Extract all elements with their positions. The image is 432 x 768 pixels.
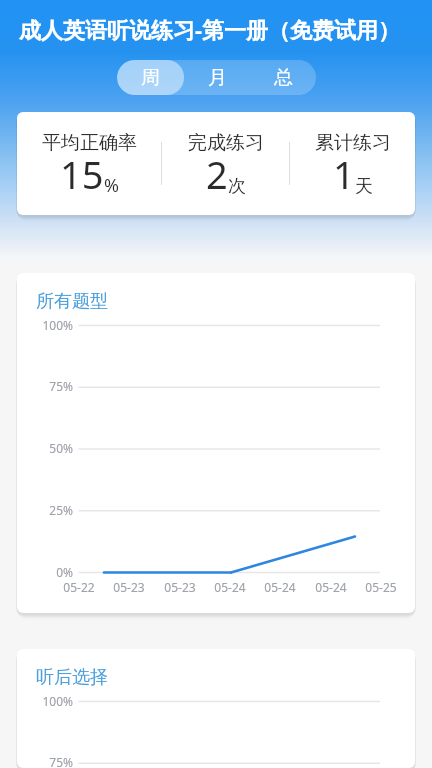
staticText: 总 — [274, 66, 293, 90]
button[interactable]: 月 — [184, 60, 250, 95]
staticText: 听后选择 — [36, 666, 108, 689]
staticText: 25% — [25, 502, 73, 518]
staticText: 所有题型 — [36, 290, 108, 313]
staticText: 成人英语听说练习-第一册（免费试用） — [19, 14, 428, 44]
staticText: 75% — [25, 378, 73, 394]
staticText: 05-25 — [355, 579, 407, 595]
button[interactable]: 周 — [117, 60, 184, 95]
staticText: 05-23 — [103, 579, 155, 595]
staticText: 0% — [25, 564, 73, 580]
staticText: 1 — [333, 148, 355, 200]
staticText: % — [104, 173, 119, 198]
staticText: 次 — [228, 175, 246, 198]
staticText: 05-24 — [254, 579, 306, 595]
staticText: 平均正确率 — [42, 131, 137, 155]
staticText: 05-23 — [154, 579, 206, 595]
staticText: 100% — [25, 693, 73, 709]
button[interactable]: 完成练习 — [162, 120, 289, 207]
button[interactable]: 平均正确率 — [17, 120, 161, 207]
staticText: 100% — [25, 317, 73, 333]
staticText: 累计练习 — [315, 131, 391, 155]
staticText: 天 — [355, 175, 373, 198]
staticText: 完成练习 — [188, 131, 264, 155]
staticText: 50% — [25, 440, 73, 456]
staticText: 2 — [206, 148, 228, 200]
staticText: 周 — [141, 66, 160, 90]
staticText: 05-24 — [204, 579, 256, 595]
button[interactable]: 累计练习 — [290, 120, 415, 207]
staticText: 05-24 — [305, 579, 357, 595]
staticText: 75% — [25, 754, 73, 768]
staticText: 月 — [208, 66, 227, 90]
button[interactable]: 总 — [250, 60, 316, 95]
staticText: 15 — [60, 148, 104, 200]
staticText: 05-22 — [53, 579, 105, 595]
